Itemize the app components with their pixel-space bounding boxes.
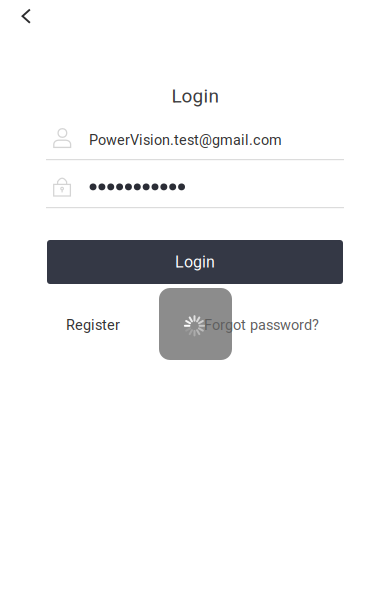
button[interactable]: Password [46,169,344,208]
button[interactable]: Login [47,240,343,284]
staticText: Login [171,85,218,107]
staticText: Forgot password? [204,316,319,333]
staticText: Login [175,253,215,271]
staticText: PowerVision.test@gmail.com [89,132,282,148]
button[interactable]: Email [46,121,344,160]
button[interactable]: Back [0,0,52,34]
staticText: Register [66,316,120,333]
button[interactable]: Register [51,306,135,344]
button[interactable]: Forgot password? [194,306,329,344]
